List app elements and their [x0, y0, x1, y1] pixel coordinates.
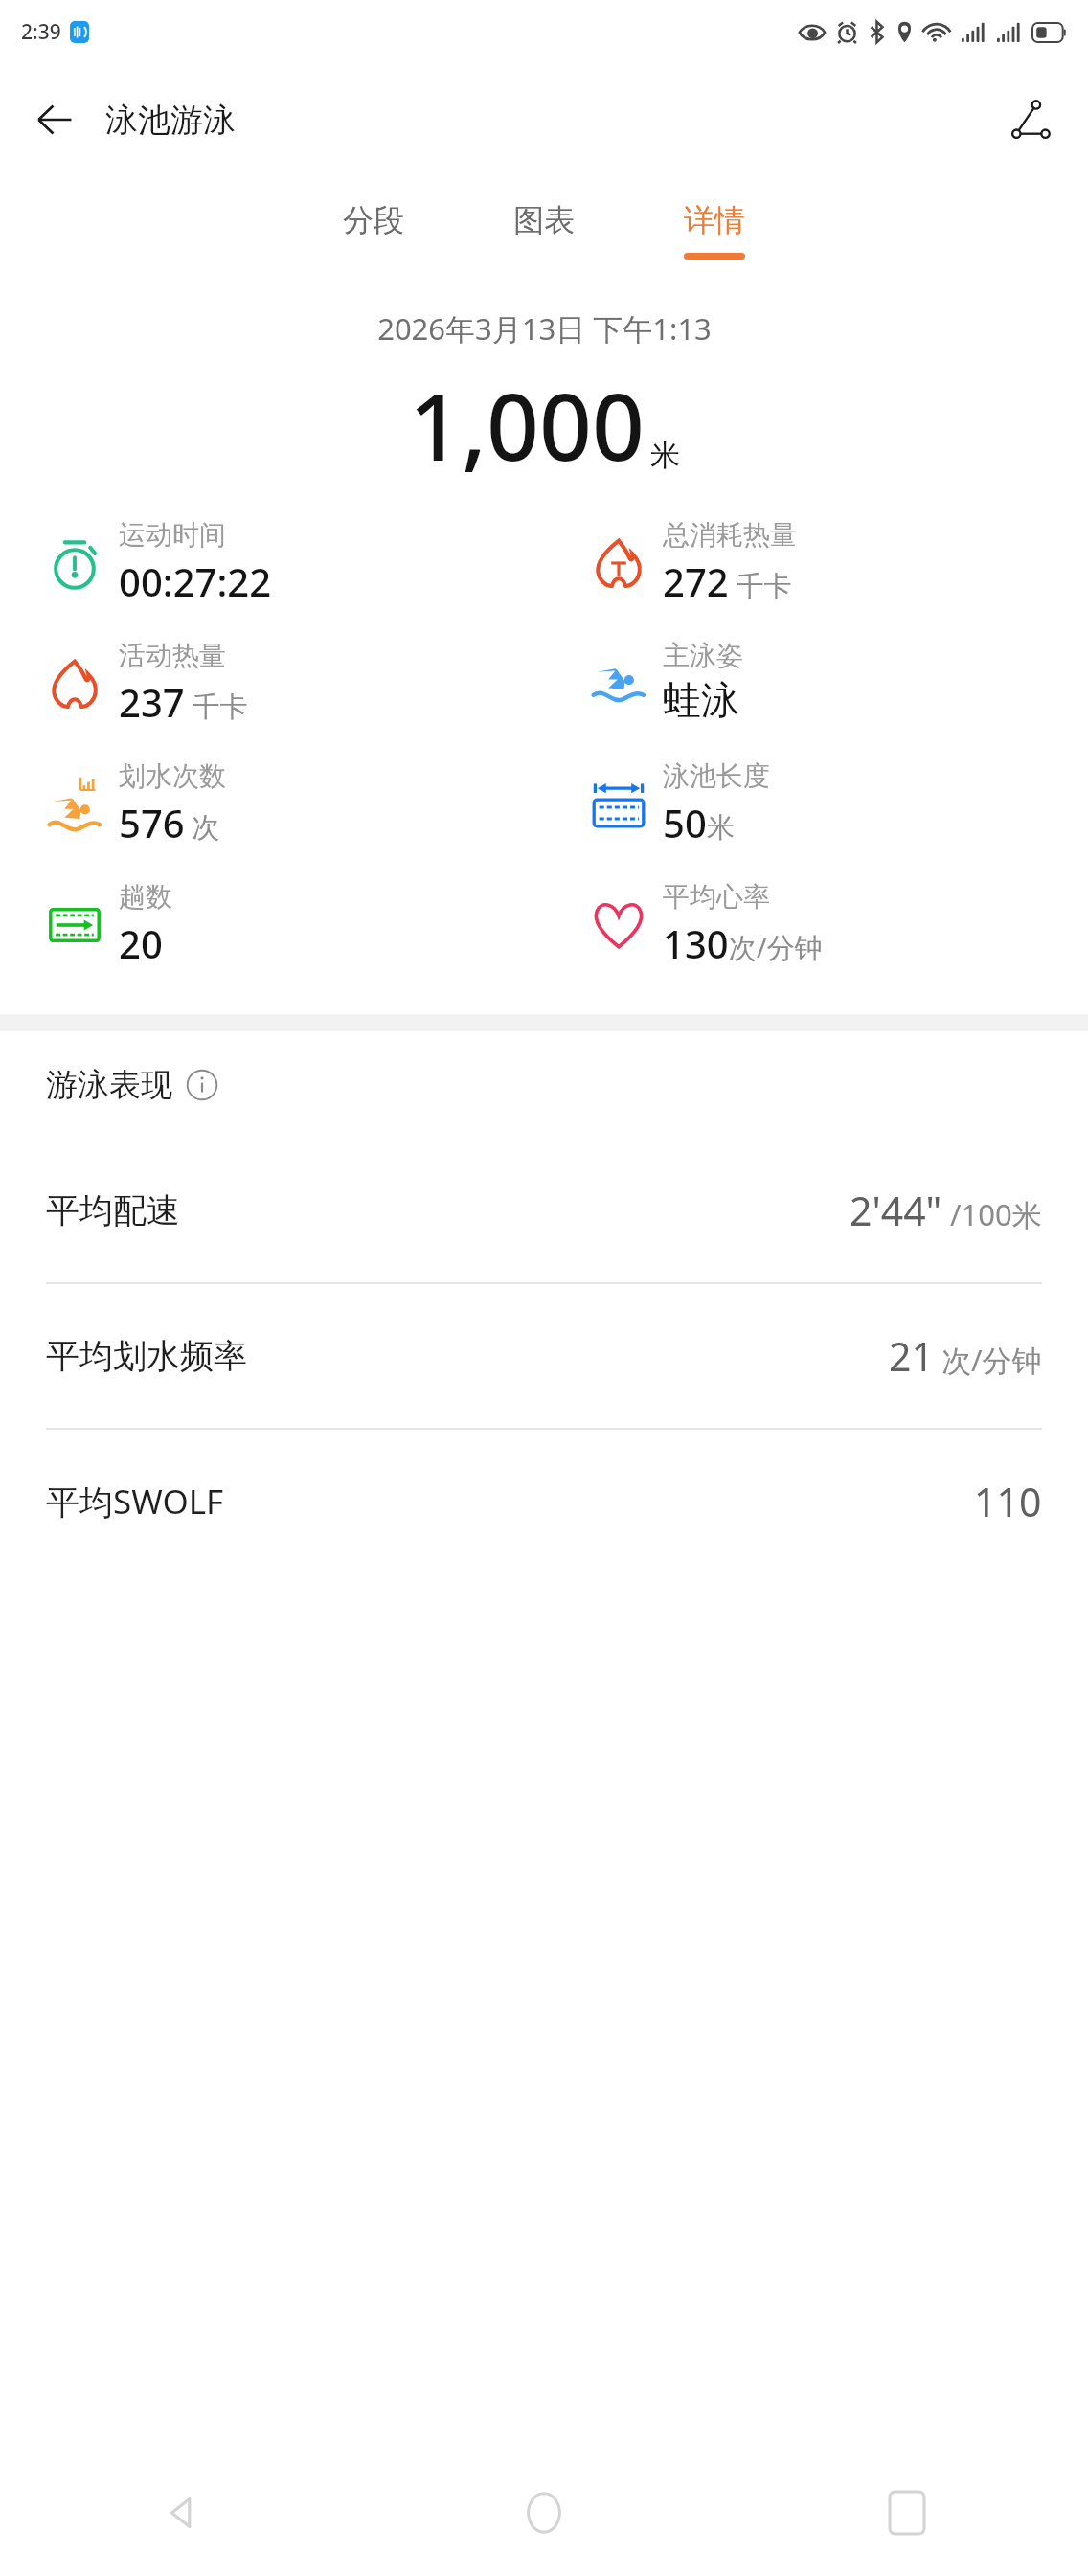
- staticText: 详情: [684, 201, 745, 239]
- staticText: 平均心率: [663, 880, 770, 914]
- staticText: 110: [974, 1475, 1042, 1528]
- staticText: 游泳表现: [46, 1065, 172, 1105]
- button[interactable]: 活动热量: [0, 639, 544, 728]
- button[interactable]: 运动时间: [0, 518, 544, 607]
- button[interactable]: 平均配速: [0, 1139, 1088, 1282]
- button[interactable]: 详情: [652, 195, 777, 265]
- staticText: 图表: [513, 201, 575, 239]
- staticText: 泳池游泳: [105, 100, 236, 141]
- button[interactable]: Recent apps: [725, 2450, 1088, 2576]
- staticText: 237: [119, 676, 185, 728]
- button[interactable]: 主泳姿: [544, 639, 1088, 724]
- staticText: 平均SWOLF: [46, 1479, 224, 1525]
- button[interactable]: 泳池长度: [544, 759, 1088, 848]
- staticText: 1,000: [409, 362, 645, 487]
- staticText: 次/分钟: [934, 1340, 1042, 1380]
- staticText: /100米: [942, 1194, 1042, 1234]
- staticText: 20: [119, 917, 163, 969]
- staticText: 2026年3月13日 下午1:13: [377, 308, 712, 349]
- staticText: 趟数: [119, 880, 172, 914]
- button[interactable]: 分段: [311, 195, 436, 265]
- button[interactable]: Share: [998, 87, 1063, 152]
- button[interactable]: Back: [23, 88, 86, 151]
- staticText: 2'44": [850, 1184, 942, 1237]
- staticText: 平均划水频率: [46, 1335, 247, 1377]
- staticText: 运动时间: [119, 518, 226, 552]
- staticText: 千卡: [185, 687, 248, 725]
- button[interactable]: 平均SWOLF: [0, 1430, 1088, 1573]
- staticText: 分段: [343, 201, 404, 239]
- button[interactable]: 总消耗热量: [544, 518, 1088, 607]
- button[interactable]: 图表: [482, 195, 606, 265]
- staticText: 泳池长度: [663, 759, 770, 793]
- staticText: 130: [663, 917, 729, 969]
- staticText: 次: [185, 807, 220, 846]
- button[interactable]: Home: [362, 2450, 725, 2576]
- staticText: 蛙泳: [663, 676, 739, 724]
- staticText: 50: [663, 797, 707, 848]
- button[interactable]: 平均心率: [544, 880, 1088, 969]
- staticText: 00:27:22: [119, 555, 272, 607]
- staticText: 活动热量: [119, 639, 226, 672]
- staticText: 272: [663, 555, 729, 607]
- staticText: 米: [650, 437, 680, 474]
- staticText: 2:39: [21, 18, 61, 46]
- staticText: 划水次数: [119, 759, 226, 793]
- staticText: 平均配速: [46, 1189, 180, 1232]
- button[interactable]: Info: [186, 1069, 218, 1101]
- staticText: 主泳姿: [663, 639, 743, 672]
- staticText: 总消耗热量: [663, 518, 797, 552]
- staticText: 米: [707, 810, 735, 846]
- staticText: 576: [119, 797, 185, 848]
- button[interactable]: 划水次数: [0, 759, 544, 848]
- staticText: 次/分钟: [729, 928, 823, 966]
- button[interactable]: 平均划水频率: [0, 1284, 1088, 1428]
- staticText: 21: [889, 1329, 934, 1383]
- button[interactable]: 趟数: [0, 880, 544, 969]
- staticText: 千卡: [729, 566, 792, 604]
